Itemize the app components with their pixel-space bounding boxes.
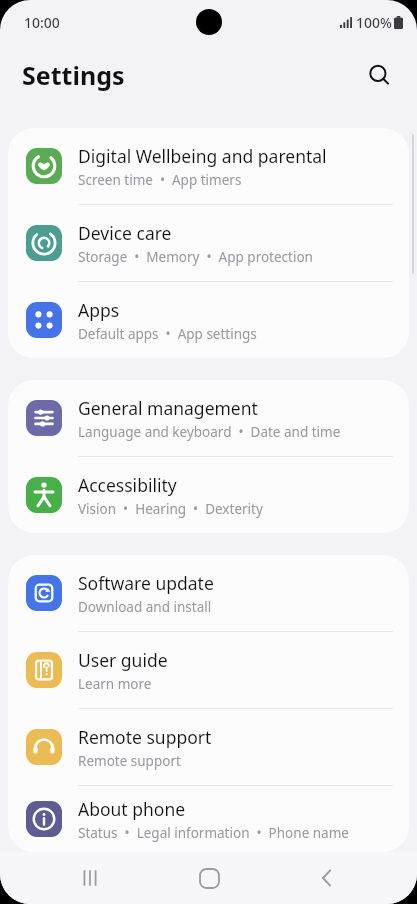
button[interactable]: User guide	[8, 632, 409, 708]
button[interactable]: Back	[299, 852, 355, 904]
staticText: Software update	[78, 571, 214, 595]
staticText: Apps	[78, 298, 120, 322]
staticText: Default apps • App settings	[78, 325, 257, 343]
staticText: Language and keyboard • Date and time	[78, 423, 341, 441]
staticText: About phone	[78, 797, 186, 821]
staticText: Settings	[22, 58, 125, 92]
button[interactable]: Apps	[8, 282, 409, 358]
staticText: Remote support	[78, 752, 181, 770]
button[interactable]: About phone	[8, 786, 409, 852]
staticText: 10:00	[24, 13, 60, 32]
button[interactable]: Remote support	[8, 709, 409, 785]
staticText: Download and install	[78, 598, 212, 616]
button[interactable]: Device care	[8, 205, 409, 281]
button[interactable]: Recent apps	[62, 852, 118, 904]
staticText: Digital Wellbeing and parental controls	[78, 144, 395, 168]
staticText: Storage • Memory • App protection	[78, 248, 313, 266]
button[interactable]: Accessibility	[8, 457, 409, 533]
staticText: Accessibility	[78, 473, 177, 497]
staticText: Screen time • App timers	[78, 171, 242, 189]
staticText: Vision • Hearing • Dexterity	[78, 500, 263, 518]
button[interactable]: Digital Wellbeing and parental controls	[8, 128, 409, 204]
staticText: Remote support	[78, 725, 212, 749]
button[interactable]: Software update	[8, 555, 409, 631]
button[interactable]: General management	[8, 380, 409, 456]
button[interactable]: Home	[181, 852, 237, 904]
button[interactable]: Search settings	[359, 55, 399, 95]
staticText: Learn more	[78, 675, 152, 693]
staticText: User guide	[78, 648, 168, 672]
staticText: General management	[78, 396, 258, 420]
staticText: Device care	[78, 221, 172, 245]
staticText: Status • Legal information • Phone name	[78, 824, 349, 842]
staticText: 100%	[356, 13, 392, 32]
